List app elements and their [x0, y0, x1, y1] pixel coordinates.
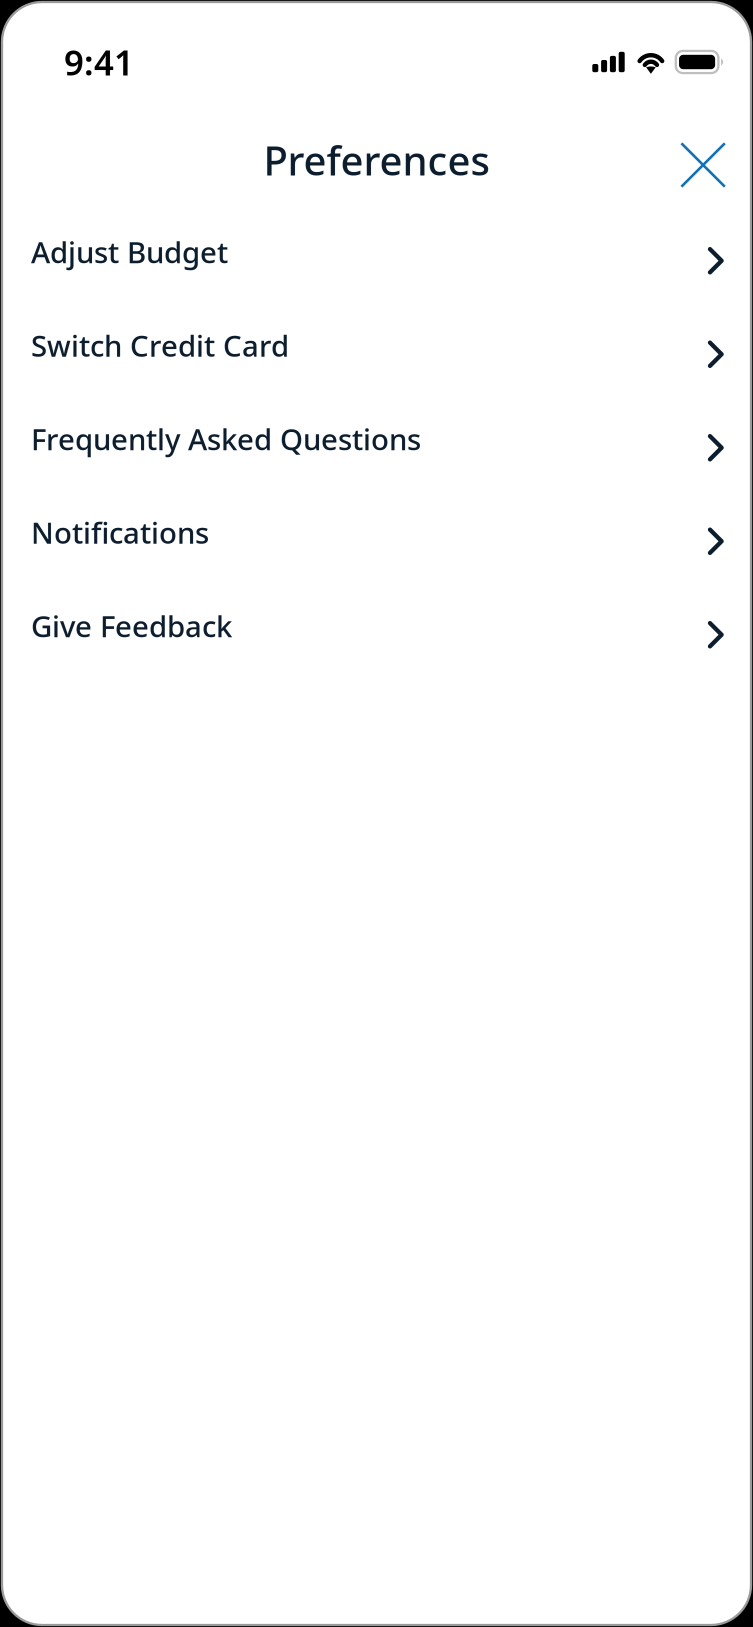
button[interactable]: Switch Credit Card — [0, 298, 753, 392]
staticText: Notifications — [31, 513, 209, 552]
staticText: Switch Credit Card — [31, 326, 289, 365]
button[interactable]: Give Feedback — [0, 579, 753, 672]
button[interactable]: Adjust Budget — [0, 205, 753, 298]
staticText: Give Feedback — [31, 606, 232, 645]
button[interactable]: Notifications — [0, 485, 753, 579]
staticText: Adjust Budget — [31, 232, 228, 271]
staticText: Preferences — [263, 133, 489, 186]
staticText: Frequently Asked Questions — [31, 419, 421, 458]
button[interactable]: Frequently Asked Questions — [0, 392, 753, 485]
staticText: 9:41 — [64, 39, 134, 85]
button[interactable]: Close — [674, 131, 732, 189]
